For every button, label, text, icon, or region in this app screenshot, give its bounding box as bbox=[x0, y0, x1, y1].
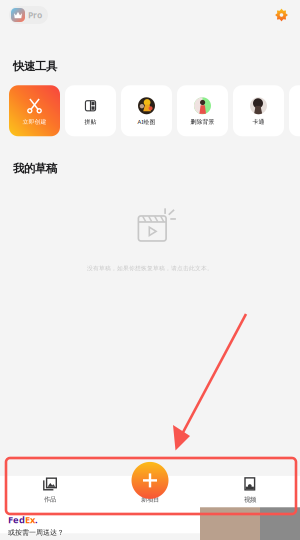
button[interactable]: Pro bbox=[9, 6, 48, 24]
button[interactable]: 拼贴 bbox=[65, 85, 116, 136]
button[interactable]: Settings bbox=[272, 5, 291, 24]
staticText: 视频 bbox=[244, 496, 256, 504]
staticText: 作品 bbox=[44, 495, 56, 503]
button[interactable]: 删除背景 bbox=[177, 85, 228, 136]
button[interactable]: 新项目 bbox=[100, 476, 200, 508]
button[interactable]: AI绘图 bbox=[121, 85, 172, 136]
staticText: 快速工具 bbox=[13, 59, 57, 73]
button[interactable]: 立即创建 bbox=[9, 85, 60, 136]
staticText: 新项目 bbox=[141, 495, 159, 503]
staticText: Ex bbox=[25, 513, 35, 526]
staticText: Fed bbox=[8, 513, 25, 526]
staticText: . bbox=[35, 513, 38, 526]
staticText: AI绘图 bbox=[137, 118, 155, 126]
button[interactable]: 卡通 bbox=[233, 85, 284, 136]
staticText: 删除背景 bbox=[190, 118, 214, 125]
staticText: Pro bbox=[28, 9, 42, 21]
button[interactable]: 作品 bbox=[0, 476, 100, 508]
staticText: 拼贴 bbox=[84, 118, 96, 125]
staticText: 没有草稿，如果你想恢复草稿，请点击此文本。 bbox=[87, 265, 213, 272]
staticText: 立即创建 bbox=[22, 118, 46, 125]
staticText: 我的草稿 bbox=[13, 161, 57, 176]
staticText: 卡通 bbox=[252, 118, 264, 125]
staticText: 或按需一周送达？ bbox=[8, 528, 64, 537]
button[interactable]: New project bbox=[131, 462, 168, 499]
button[interactable]: 视频 bbox=[200, 476, 300, 508]
